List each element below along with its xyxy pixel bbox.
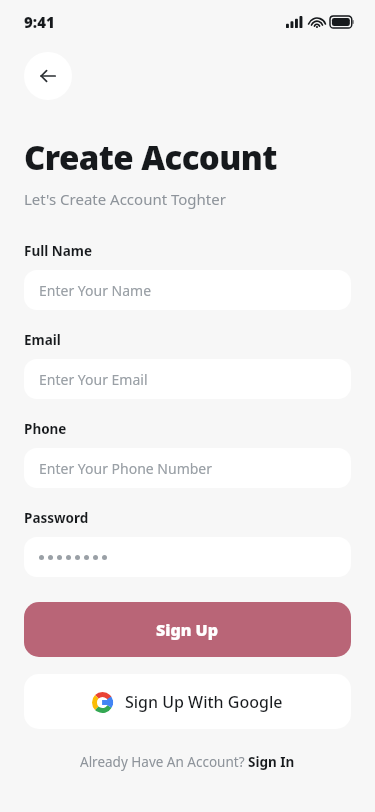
button[interactable]: Enter Your Phone Number (24, 448, 351, 488)
staticText: Sign Up With Google (125, 691, 283, 713)
button[interactable]: Password (24, 537, 351, 577)
staticText: Password (24, 509, 89, 527)
button[interactable]: Already Have An Account? Sign In (76, 751, 299, 773)
button[interactable]: Enter Your Email (24, 359, 351, 399)
button[interactable]: Enter Your Name (24, 270, 351, 310)
staticText: Enter Your Phone Number (39, 459, 213, 478)
staticText: Email (24, 331, 61, 349)
staticText: Already Have An Account? Sign In (80, 753, 295, 771)
staticText: Let's Create Account Toghter (24, 189, 226, 209)
button[interactable]: Sign Up With Google (24, 674, 351, 729)
staticText: Enter Your Name (39, 281, 152, 300)
button[interactable]: Back (24, 52, 72, 100)
staticText: Enter Your Email (39, 370, 148, 389)
staticText: Full Name (24, 242, 93, 260)
staticText: Create Account (24, 135, 277, 180)
button[interactable]: Sign Up (24, 602, 351, 657)
staticText: 9:41 (24, 12, 55, 32)
staticText: Sign Up (156, 619, 219, 641)
staticText: Phone (24, 420, 67, 438)
